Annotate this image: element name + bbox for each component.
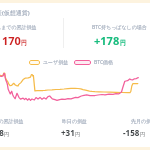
staticText: これまでの累計損益: [0, 118, 24, 124]
button[interactable]: これまでの累計損益: [0, 24, 58, 30]
button[interactable]: BTC持ちっぱなしの場合: [92, 24, 147, 31]
staticText: +31: [61, 127, 75, 138]
button[interactable]: +31: [61, 127, 80, 138]
button[interactable]: 昨日の損益: [62, 118, 88, 124]
button[interactable]: -48: [0, 127, 9, 138]
button[interactable]: +178: [84, 33, 136, 48]
staticText: BTC持ちっぱなしの場合: [92, 24, 147, 31]
staticText: 円: [21, 39, 27, 47]
button[interactable]: 先月の損益: [131, 118, 150, 124]
staticText: 円: [140, 131, 145, 137]
staticText: 昨日の損益: [62, 118, 88, 124]
staticText: 円: [4, 131, 9, 137]
staticText: -158: [123, 127, 140, 138]
staticText: 資産(仮想通貨): [0, 9, 30, 17]
staticText: ユーザ損益: [43, 59, 69, 65]
staticText: -48: [0, 127, 4, 138]
staticText: 170: [2, 33, 21, 48]
button[interactable]: 170: [0, 33, 40, 48]
staticText: 円: [120, 39, 126, 47]
button[interactable]: これまでの累計損益: [0, 118, 24, 124]
staticText: BTC価格: [94, 59, 114, 66]
staticText: 先月の損益: [131, 118, 150, 124]
staticText: これまでの累計損益: [0, 24, 37, 30]
staticText: 円: [75, 131, 80, 137]
staticText: +178: [94, 33, 120, 48]
button[interactable]: -158: [123, 127, 145, 138]
